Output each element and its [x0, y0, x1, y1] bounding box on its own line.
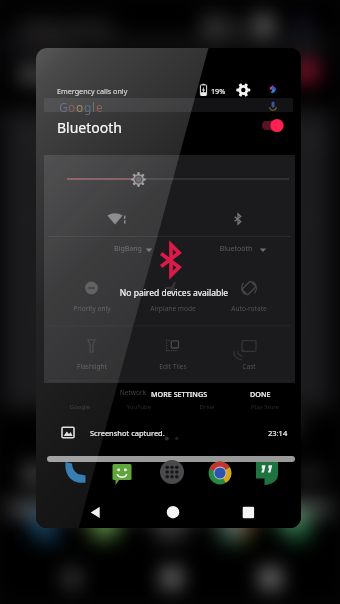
staticText: g — [55, 37, 65, 58]
staticText: Priority only — [0, 305, 144, 317]
staticText: Bluetooth — [176, 244, 296, 254]
staticText: G — [59, 99, 68, 115]
staticText: Cast — [193, 381, 340, 393]
staticText: Drive — [138, 435, 295, 445]
staticText: Priority only — [32, 304, 152, 313]
staticText: No paired devices available — [114, 287, 234, 299]
staticText: Emergency calls only — [57, 86, 128, 96]
staticText: l — [65, 37, 71, 58]
staticText: BigBang — [34, 227, 191, 240]
staticText: Google — [0, 435, 128, 445]
staticText: Auto-rotate — [193, 305, 340, 317]
staticText: o — [76, 99, 84, 115]
staticText: Bluetooth — [57, 118, 122, 137]
staticText: Play Store — [205, 403, 325, 411]
staticText: Emergency calls only — [20, 20, 113, 33]
staticText: o — [34, 37, 45, 58]
staticText: Network — [41, 415, 198, 427]
staticText: Airplane mode — [93, 305, 250, 317]
staticText: Airplane mode — [113, 304, 233, 313]
staticText: Screenshot captured. — [63, 468, 161, 481]
staticText: YouTube — [48, 435, 206, 445]
staticText: Bluetooth — [176, 227, 333, 240]
staticText: BigBang — [68, 244, 188, 254]
staticText: No paired devices available — [94, 283, 251, 299]
staticText: e — [96, 99, 103, 115]
staticText: Drive — [147, 403, 267, 411]
staticText: 19% — [221, 20, 241, 33]
staticText: Bluetooth — [20, 62, 105, 86]
staticText: Network — [73, 388, 193, 397]
staticText: 19% — [211, 86, 226, 96]
staticText: 23:14 — [268, 428, 288, 438]
staticText: 23:14 — [296, 468, 322, 481]
staticText: Flashlight — [0, 381, 144, 393]
staticText: Play Store — [213, 435, 340, 445]
staticText: Cast — [189, 362, 309, 371]
staticText: l — [92, 99, 96, 115]
staticText: o — [68, 99, 76, 115]
staticText: YouTube — [79, 403, 199, 411]
staticText: Edit Tiles — [93, 381, 250, 393]
staticText: Edit Tiles — [113, 362, 233, 371]
staticText: Auto-rotate — [189, 304, 309, 313]
staticText: Screenshot captured. — [90, 428, 165, 438]
staticText: MORE SETTINGS — [151, 389, 208, 399]
staticText: g — [84, 99, 92, 115]
staticText: Google — [20, 403, 140, 411]
staticText: Flashlight — [32, 362, 152, 371]
staticText: DONE — [250, 389, 271, 399]
staticText: e — [71, 37, 80, 58]
staticText: o — [45, 37, 55, 58]
